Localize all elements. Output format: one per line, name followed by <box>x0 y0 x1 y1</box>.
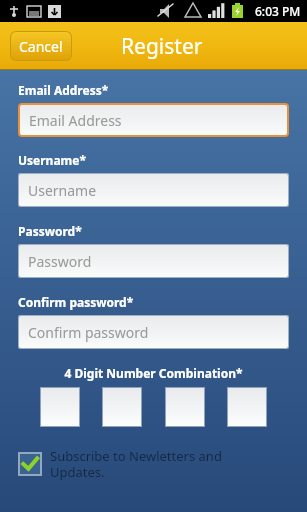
staticText: Register <box>121 32 203 61</box>
button[interactable]: Digit 2 <box>103 388 141 426</box>
button[interactable]: Username <box>19 174 288 206</box>
button[interactable]: Digit 4 <box>228 388 266 426</box>
staticText: Cancel <box>19 37 63 56</box>
staticText: Confirm password <box>28 323 149 342</box>
staticText: Password* <box>18 223 82 239</box>
button[interactable]: Cancel <box>11 32 71 60</box>
button[interactable]: Confirm password <box>19 316 288 348</box>
staticText: Confirm password* <box>18 294 134 310</box>
button[interactable]: Digit 1 <box>41 388 79 426</box>
button[interactable]: Password <box>19 245 288 277</box>
staticText: Username <box>28 181 97 200</box>
button[interactable]: Digit 3 <box>166 388 204 426</box>
staticText: 6:03 PM <box>255 3 301 19</box>
staticText: Email Address <box>29 111 122 130</box>
staticText: Email Address* <box>18 82 109 98</box>
button[interactable]: Subscribe to Newletters and Updates. <box>18 447 289 480</box>
staticText: 4 Digit Number Combination* <box>18 365 289 381</box>
staticText: Username* <box>18 152 86 168</box>
button[interactable]: Email Address <box>20 105 287 135</box>
staticText: Password <box>28 252 92 271</box>
staticText: Subscribe to Newletters and Updates. <box>50 447 222 480</box>
